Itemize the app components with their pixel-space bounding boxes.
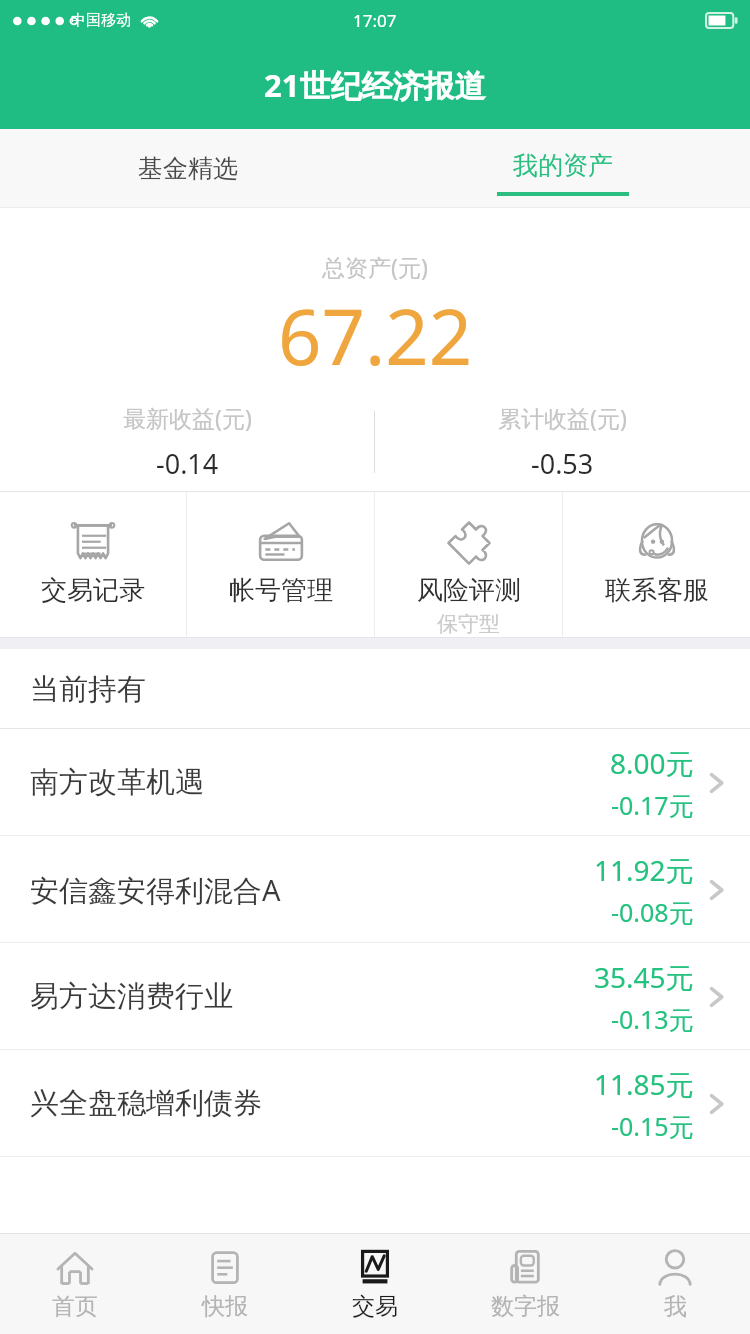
staticText: 联系客服 bbox=[605, 574, 709, 607]
button[interactable]: 风险评测 bbox=[375, 492, 562, 637]
staticText: 保守型 bbox=[437, 611, 500, 637]
button[interactable]: 交易 bbox=[300, 1234, 450, 1334]
staticText: 风险评测 bbox=[417, 574, 521, 607]
button[interactable]: 安信鑫安得利混合A bbox=[0, 836, 750, 943]
staticText: 南方改革机遇 bbox=[30, 764, 610, 801]
staticText: 帐号管理 bbox=[229, 574, 333, 607]
button[interactable]: 易方达消费行业 bbox=[0, 943, 750, 1050]
staticText: -0.08元 bbox=[611, 895, 694, 929]
button[interactable]: 快报 bbox=[150, 1234, 300, 1334]
staticText: 当前持有 bbox=[30, 671, 146, 708]
button[interactable]: 基金精选 bbox=[0, 129, 375, 208]
staticText: 8.00元 bbox=[610, 744, 694, 782]
staticText: -0.14 bbox=[156, 445, 219, 482]
staticText: 我的资产 bbox=[513, 150, 613, 181]
staticText: 首页 bbox=[52, 1292, 98, 1321]
staticText: 安信鑫安得利混合A bbox=[30, 870, 594, 910]
staticText: 11.85元 bbox=[594, 1065, 694, 1103]
staticText: 11.92元 bbox=[594, 851, 694, 889]
staticText: -0.53 bbox=[531, 445, 594, 482]
button[interactable]: 我的资产 bbox=[375, 129, 750, 208]
staticText: 中国移动 bbox=[71, 11, 131, 30]
staticText: 总资产(元) bbox=[322, 251, 428, 282]
button[interactable]: 数字报 bbox=[450, 1234, 600, 1334]
staticText: 兴全盘稳增利债券 bbox=[30, 1085, 594, 1122]
button[interactable]: 首页 bbox=[0, 1234, 150, 1334]
button[interactable]: 联系客服 bbox=[563, 492, 750, 637]
staticText: 快报 bbox=[202, 1292, 248, 1321]
staticText: 21世纪经济报道 bbox=[264, 64, 486, 106]
staticText: 基金精选 bbox=[138, 153, 238, 184]
staticText: 17:07 bbox=[353, 9, 397, 32]
staticText: 累计收益(元) bbox=[498, 402, 627, 433]
staticText: 35.45元 bbox=[594, 958, 694, 996]
button[interactable]: 帐号管理 bbox=[187, 492, 374, 637]
staticText: 易方达消费行业 bbox=[30, 978, 594, 1015]
button[interactable]: 南方改革机遇 bbox=[0, 729, 750, 836]
staticText: -0.13元 bbox=[611, 1002, 694, 1036]
staticText: 67.22 bbox=[278, 284, 473, 388]
staticText: 我 bbox=[664, 1292, 687, 1321]
staticText: 交易 bbox=[352, 1292, 398, 1321]
staticText: 最新收益(元) bbox=[123, 402, 252, 433]
button[interactable]: 我 bbox=[600, 1234, 750, 1334]
staticText: -0.17元 bbox=[611, 788, 694, 822]
button[interactable]: 交易记录 bbox=[0, 492, 186, 637]
button[interactable]: 兴全盘稳增利债券 bbox=[0, 1050, 750, 1157]
staticText: 数字报 bbox=[491, 1292, 560, 1321]
staticText: -0.15元 bbox=[611, 1109, 694, 1143]
staticText: 交易记录 bbox=[41, 574, 145, 607]
